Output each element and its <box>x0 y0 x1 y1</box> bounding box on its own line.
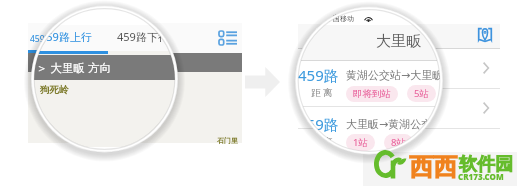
staticText: 459路 <box>304 95 334 110</box>
staticText: 459路 <box>298 114 339 134</box>
staticText: 大里畈→黄湖公交站 <box>346 117 444 131</box>
button[interactable]: 459路 <box>298 49 500 88</box>
staticText: 8站 <box>401 113 413 123</box>
staticText: 中国移动 <box>326 14 354 23</box>
staticText: ＞ 大里畈 方向 <box>31 57 90 69</box>
staticText: 5站 <box>401 73 413 83</box>
staticText: 8站 <box>391 136 406 149</box>
button[interactable]: Map <box>477 27 493 43</box>
staticText: 大里畈 <box>376 32 421 51</box>
staticText: 459路下行 <box>117 29 169 44</box>
staticText: 距 离 <box>310 113 326 123</box>
staticText: 狗死岭 <box>40 84 69 96</box>
staticText: 1站 <box>347 113 359 123</box>
staticText: 5站 <box>414 87 429 100</box>
staticText: 459路上行 <box>30 33 71 45</box>
staticText: 黄湖公交站→大里畈 <box>346 68 444 82</box>
button[interactable]: ＞ 大里畈 方向 <box>31 55 219 80</box>
button[interactable]: 459路 <box>298 89 500 128</box>
staticText: CR173.COM <box>458 171 504 182</box>
staticText: 石门里 <box>217 136 238 145</box>
staticText: 距 离 <box>310 73 326 83</box>
staticText: 黄湖公交站→大里畈 <box>343 57 414 67</box>
staticText: 即将到站 <box>347 73 375 82</box>
staticText: 中国移动 <box>333 13 357 21</box>
staticText: 大里畈→黄湖公交站 <box>343 97 414 107</box>
staticText: 距 离 <box>311 86 333 99</box>
staticText: 大里畈 <box>383 29 416 43</box>
staticText: 459路上行 <box>40 29 92 44</box>
button[interactable]: List view <box>218 30 238 45</box>
staticText: 距 离 <box>311 135 333 148</box>
staticText: 459路 <box>298 65 339 85</box>
staticText: 459路 <box>304 55 334 70</box>
staticText: 狗死岭 <box>37 81 58 90</box>
staticText: 459路下行 <box>92 33 133 45</box>
staticText: 1站 <box>353 136 368 149</box>
staticText: 西西 <box>409 152 457 182</box>
button[interactable]: ＞ 大里畈 方向 <box>28 53 242 72</box>
staticText: 软件园 <box>459 153 513 176</box>
staticText: 即将到站 <box>353 88 391 100</box>
staticText: ＞ 大里畈 方向 <box>36 60 111 76</box>
